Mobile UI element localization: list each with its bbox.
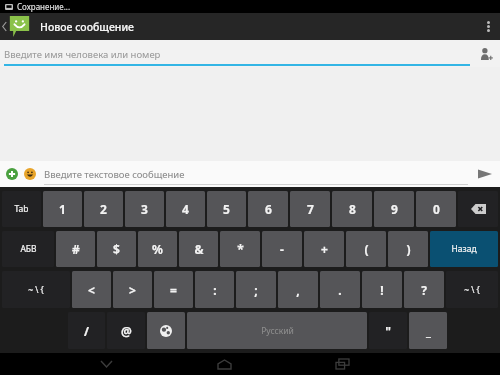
- button[interactable]: <: [72, 271, 111, 308]
- button[interactable]: *: [220, 231, 260, 267]
- staticText: 1: [59, 201, 66, 217]
- button[interactable]: /: [68, 312, 105, 349]
- button[interactable]: Add recipient from contacts: [476, 44, 496, 64]
- button[interactable]: -: [262, 231, 302, 267]
- staticText: 6: [265, 201, 272, 217]
- staticText: =: [170, 282, 177, 298]
- staticText: Новое сообщение: [40, 20, 134, 34]
- staticText: /: [84, 323, 89, 339]
- button[interactable]: !: [362, 271, 402, 308]
- staticText: <: [88, 282, 95, 298]
- staticText: ): [406, 241, 411, 257]
- staticText: &: [194, 241, 204, 257]
- button[interactable]: Введите текстовое сообщение: [44, 163, 468, 185]
- button[interactable]: ;: [236, 271, 276, 308]
- button[interactable]: Up: [0, 13, 34, 40]
- staticText: 5: [223, 201, 230, 217]
- button[interactable]: 1: [43, 191, 82, 227]
- button[interactable]: :: [195, 271, 234, 308]
- staticText: ,: [296, 282, 300, 298]
- button[interactable]: Change keyboard language: [147, 312, 185, 349]
- button[interactable]: Insert emoji: [22, 166, 38, 182]
- button[interactable]: Tab: [2, 191, 41, 227]
- staticText: $: [113, 241, 120, 257]
- staticText: +: [321, 241, 328, 257]
- button[interactable]: %: [138, 231, 177, 267]
- staticText: 2: [100, 201, 107, 217]
- staticText: 0: [433, 201, 440, 217]
- button[interactable]: .: [320, 271, 360, 308]
- staticText: (: [364, 241, 369, 257]
- button[interactable]: _: [409, 312, 447, 349]
- staticText: 7: [307, 201, 314, 217]
- button[interactable]: #: [56, 231, 95, 267]
- button[interactable]: >: [113, 271, 152, 308]
- button[interactable]: Hide keyboard: [86, 353, 126, 375]
- button[interactable]: ?: [404, 271, 444, 308]
- staticText: %: [152, 241, 163, 257]
- staticText: Назад: [451, 243, 477, 255]
- staticText: -: [280, 241, 284, 257]
- button[interactable]: Назад: [430, 231, 498, 267]
- staticText: >: [129, 282, 136, 298]
- staticText: Tab: [14, 203, 29, 215]
- button[interactable]: More options: [476, 13, 500, 40]
- staticText: :: [213, 282, 217, 298]
- button[interactable]: Русский: [187, 312, 367, 349]
- staticText: 9: [391, 201, 398, 217]
- button[interactable]: Backspace: [458, 191, 498, 227]
- staticText: ": [385, 323, 391, 339]
- button[interactable]: (: [346, 231, 386, 267]
- button[interactable]: @: [107, 312, 145, 349]
- button[interactable]: 3: [125, 191, 164, 227]
- button[interactable]: 6: [248, 191, 288, 227]
- button[interactable]: Add attachment: [4, 166, 20, 182]
- staticText: ?: [421, 282, 427, 298]
- button[interactable]: 8: [332, 191, 372, 227]
- button[interactable]: =: [154, 271, 193, 308]
- button[interactable]: Send: [474, 163, 496, 185]
- staticText: Сохранение...: [17, 1, 71, 12]
- staticText: ~ \ {: [464, 284, 480, 296]
- button[interactable]: 2: [84, 191, 123, 227]
- staticText: *: [237, 241, 244, 257]
- staticText: #: [72, 241, 80, 257]
- staticText: .: [338, 282, 342, 298]
- button[interactable]: ): [388, 231, 428, 267]
- button[interactable]: 7: [290, 191, 330, 227]
- staticText: 8: [349, 201, 356, 217]
- staticText: @: [121, 323, 132, 339]
- staticText: ~ \ {: [28, 284, 44, 296]
- button[interactable]: 0: [416, 191, 456, 227]
- staticText: _: [426, 323, 431, 339]
- staticText: 4: [182, 201, 189, 217]
- button[interactable]: Home: [204, 353, 244, 375]
- button[interactable]: ~ \ {: [2, 271, 70, 308]
- button[interactable]: ,: [278, 271, 318, 308]
- button[interactable]: $: [97, 231, 136, 267]
- button[interactable]: ~ \ {: [446, 271, 498, 308]
- button[interactable]: АБВ: [2, 231, 54, 267]
- staticText: ;: [254, 282, 258, 298]
- staticText: Введите текстовое сообщение: [44, 168, 185, 181]
- staticText: АБВ: [20, 243, 37, 255]
- button[interactable]: &: [179, 231, 218, 267]
- button[interactable]: 4: [166, 191, 205, 227]
- button[interactable]: 5: [207, 191, 246, 227]
- button[interactable]: Recent apps: [322, 353, 362, 375]
- staticText: !: [380, 282, 384, 298]
- staticText: Введите имя человека или номер: [4, 48, 161, 61]
- staticText: Русский: [261, 325, 294, 337]
- button[interactable]: ": [369, 312, 407, 349]
- button[interactable]: Введите имя человека или номер: [4, 41, 470, 66]
- button[interactable]: +: [304, 231, 344, 267]
- button[interactable]: 9: [374, 191, 414, 227]
- staticText: 3: [141, 201, 148, 217]
